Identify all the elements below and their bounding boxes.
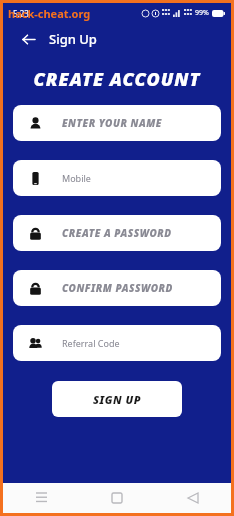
- staticText: CREATE ACCOUNT: [3, 67, 231, 92]
- staticText: 99%: [195, 8, 209, 18]
- button[interactable]: Recents: [26, 483, 56, 513]
- button[interactable]: SIGN UP: [52, 381, 182, 417]
- button[interactable]: Back: [15, 26, 41, 52]
- staticText: hack-cheat.org: [8, 6, 91, 21]
- staticText: Referral Code: [62, 337, 120, 349]
- staticText: SIGN UP: [93, 392, 142, 407]
- staticText: 5:23: [13, 8, 29, 19]
- staticText: CREATE A PASSWORD: [62, 226, 172, 240]
- button[interactable]: Referral Code: [13, 325, 221, 361]
- button[interactable]: Back: [178, 483, 208, 513]
- staticText: CONFIRM PASSWORD: [62, 281, 173, 295]
- button[interactable]: Mobile: [13, 160, 221, 196]
- staticText: Mobile: [62, 172, 91, 184]
- staticText: ENTER YOUR NAME: [62, 116, 162, 130]
- button[interactable]: ENTER YOUR NAME: [13, 105, 221, 141]
- button[interactable]: Home: [102, 483, 132, 513]
- staticText: Sign Up: [49, 30, 97, 48]
- button[interactable]: CREATE A PASSWORD: [13, 215, 221, 251]
- button[interactable]: CONFIRM PASSWORD: [13, 270, 221, 306]
